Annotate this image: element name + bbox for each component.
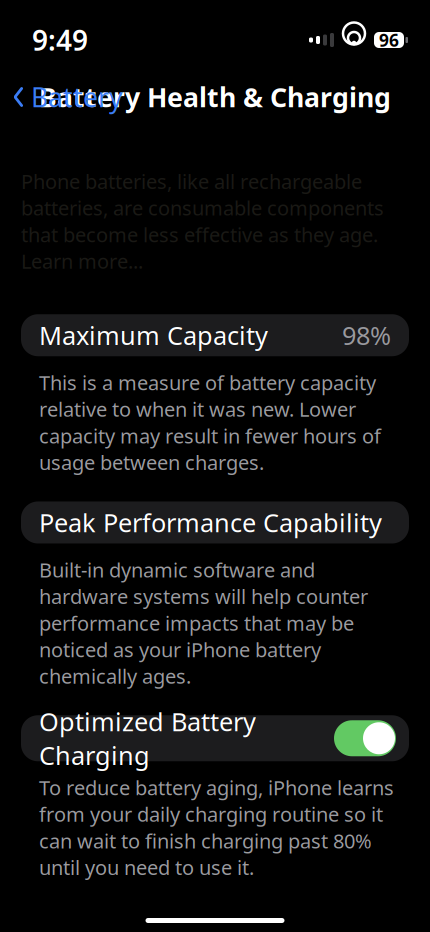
button[interactable]: Battery [0, 71, 123, 123]
staticText: Phone batteries, like all rechargeable b… [21, 168, 384, 274]
staticText: 96 [379, 28, 399, 51]
staticText: 9:49 [32, 21, 88, 59]
staticText: 98% [342, 318, 391, 352]
staticText: Optimized Battery Charging [39, 705, 256, 772]
button[interactable]: Optimized Battery Charging [21, 715, 409, 761]
button[interactable]: Maximum Capacity [21, 314, 409, 356]
staticText: Peak Performance Capability [39, 506, 382, 539]
staticText: Battery Health & Charging [39, 79, 391, 115]
staticText: Maximum Capacity [39, 318, 268, 352]
staticText: To reduce battery aging, iPhone learns f… [39, 774, 394, 880]
staticText: Battery [31, 79, 123, 115]
staticText: Built-in dynamic software and hardware s… [39, 556, 368, 689]
staticText: This is a measure of battery capacity re… [39, 369, 381, 475]
button[interactable]: Peak Performance Capability [21, 501, 409, 543]
